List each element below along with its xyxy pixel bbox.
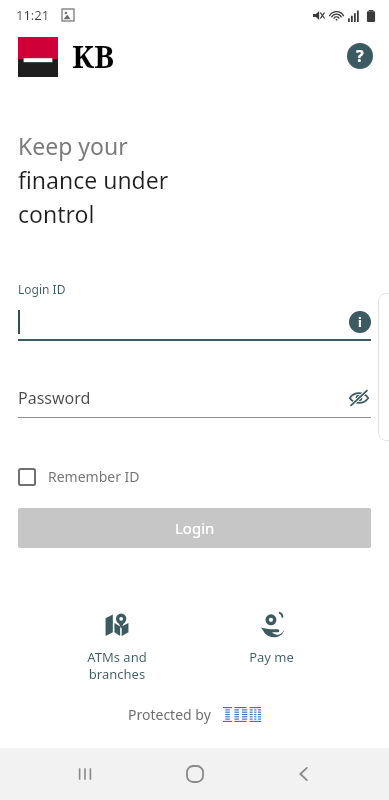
staticText: KB: [72, 36, 115, 77]
button[interactable]: ATMs and branches: [60, 608, 174, 687]
staticText: control: [18, 198, 95, 229]
button[interactable]: Login ID info: [349, 311, 371, 333]
button[interactable]: Remember ID: [18, 467, 140, 486]
button[interactable]: Recent apps: [61, 750, 109, 798]
staticText: ?: [356, 45, 364, 67]
staticText: Password: [18, 387, 91, 409]
button[interactable]: Help: [347, 43, 373, 69]
staticText: Protected by: [128, 705, 211, 724]
button[interactable]: Home: [171, 750, 219, 798]
button[interactable]: Show password: [347, 386, 371, 410]
staticText: Login: [175, 518, 215, 538]
staticText: Pay me: [249, 648, 294, 666]
staticText: Login ID: [18, 281, 66, 297]
staticText: ATMs and branches: [87, 648, 147, 683]
staticText: Remember ID: [48, 467, 140, 486]
button[interactable]: Login: [18, 508, 371, 548]
staticText: i: [358, 313, 362, 331]
staticText: 11:21: [16, 6, 50, 24]
staticText: Keep your: [18, 130, 128, 161]
button[interactable]: Back: [280, 750, 328, 798]
button[interactable]: Pay me: [214, 608, 329, 670]
staticText: finance under: [18, 164, 169, 195]
